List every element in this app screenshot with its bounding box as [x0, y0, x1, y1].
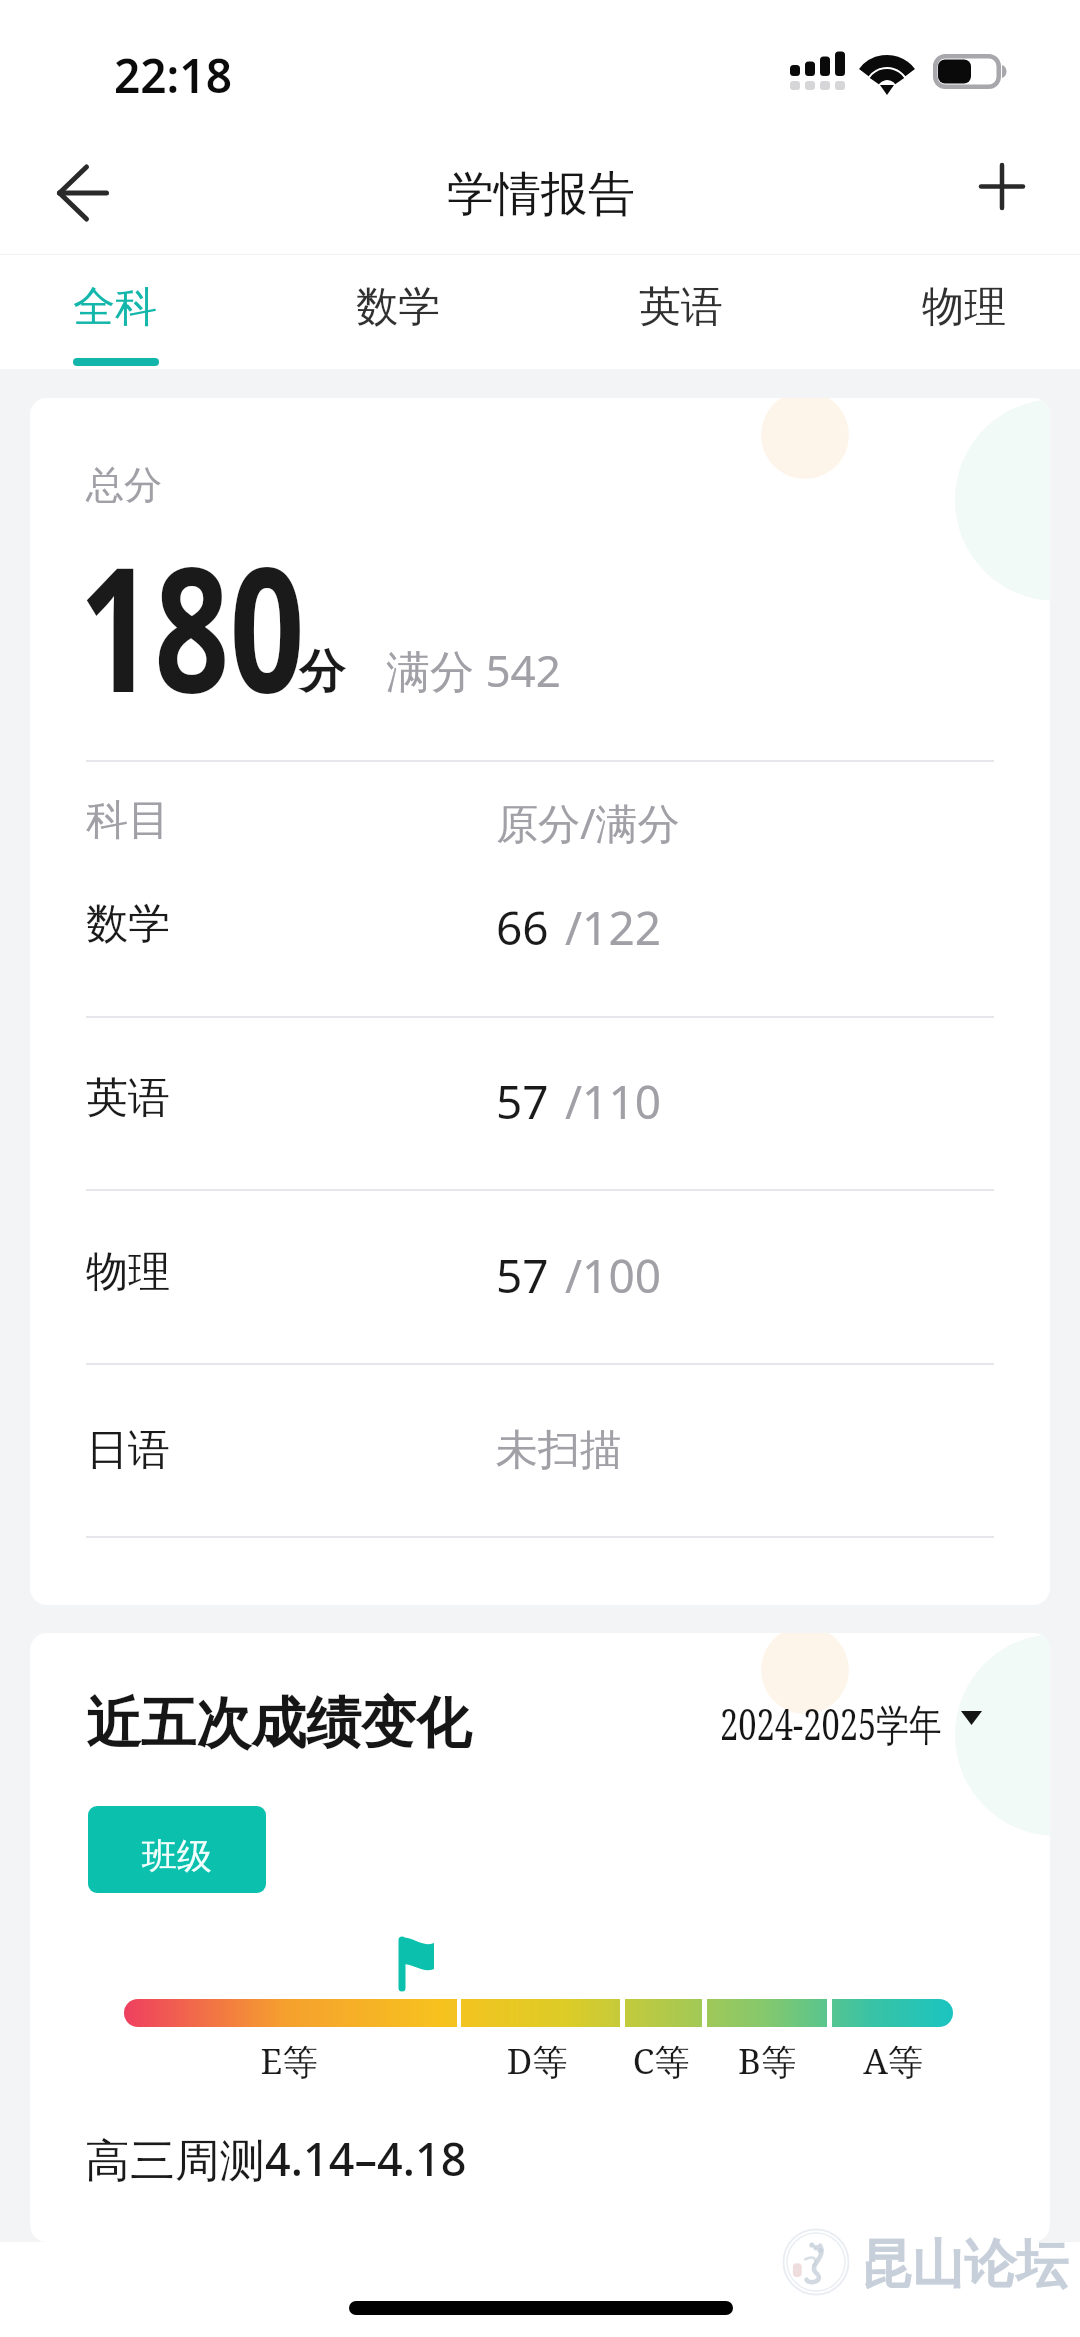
- staticText: /122: [565, 896, 662, 959]
- staticText: 高三周测4.14–4.18: [85, 2128, 467, 2189]
- staticText: 近五次成绩变化: [86, 1689, 471, 1758]
- staticText: 66: [496, 896, 549, 959]
- button[interactable]: 班级: [88, 1806, 266, 1893]
- button[interactable]: 2024-2025学年: [702, 1689, 1042, 1769]
- staticText: C等: [601, 2037, 721, 2085]
- staticText: 57: [496, 1244, 549, 1307]
- staticText: D等: [477, 2037, 597, 2085]
- staticText: E等: [229, 2037, 349, 2085]
- button[interactable]: Add: [946, 141, 1058, 231]
- staticText: 日语: [86, 1424, 170, 1477]
- button[interactable]: [30, 1016, 1050, 1189]
- button[interactable]: [30, 1189, 1050, 1363]
- staticText: 英语: [86, 1072, 170, 1125]
- button[interactable]: 全科: [0, 255, 250, 369]
- staticText: 科目: [86, 794, 170, 847]
- staticText: 物理: [922, 281, 1006, 334]
- staticText: 57: [496, 1070, 549, 1133]
- staticText: A等: [833, 2037, 953, 2085]
- staticText: 180: [79, 508, 305, 742]
- button[interactable]: [30, 760, 1050, 1016]
- button[interactable]: [30, 1536, 1050, 1605]
- staticText: 22:18: [114, 44, 232, 107]
- staticText: 物理: [86, 1246, 170, 1299]
- button[interactable]: [30, 1363, 1050, 1536]
- staticText: 2024-2025学年: [720, 1694, 942, 1753]
- button[interactable]: Back: [25, 148, 141, 238]
- staticText: /100: [565, 1244, 662, 1307]
- staticText: 数学: [356, 281, 440, 334]
- staticText: 分: [299, 643, 345, 701]
- staticText: 班级: [142, 1834, 212, 1878]
- staticText: B等: [707, 2037, 827, 2085]
- staticText: 数学: [86, 898, 170, 951]
- staticText: 学情报告: [447, 165, 635, 224]
- staticText: 英语: [639, 281, 723, 334]
- button[interactable]: 数学: [263, 255, 533, 369]
- button[interactable]: 英语: [546, 255, 816, 369]
- staticText: 总分: [86, 461, 162, 509]
- staticText: /110: [565, 1070, 662, 1133]
- button[interactable]: 物理: [829, 255, 1080, 369]
- staticText: 满分 542: [386, 640, 561, 700]
- staticText: 昆山论坛: [860, 2232, 1068, 2298]
- staticText: 原分/满分: [496, 794, 680, 851]
- staticText: 未扫描: [496, 1424, 622, 1477]
- staticText: 全科: [73, 281, 157, 334]
